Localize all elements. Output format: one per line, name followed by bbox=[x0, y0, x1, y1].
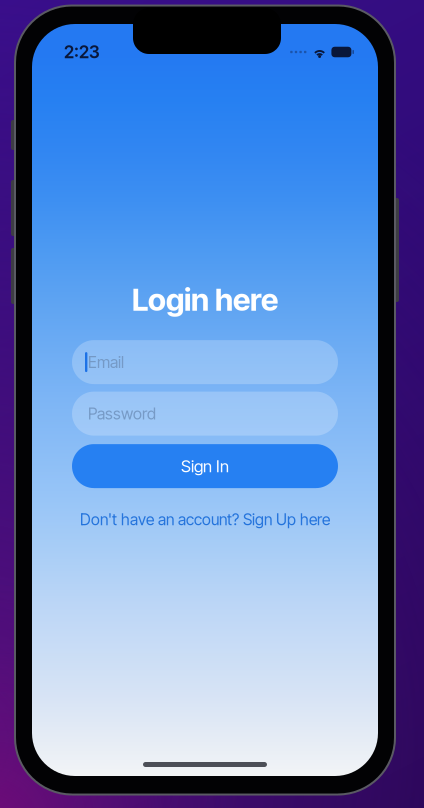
button[interactable]: Sign In bbox=[72, 444, 338, 488]
staticText: Password bbox=[88, 404, 156, 423]
staticText: Email bbox=[88, 352, 124, 372]
button[interactable]: Email bbox=[72, 340, 338, 384]
staticText: Sign In bbox=[181, 456, 229, 476]
staticText: Don't have an account? Sign Up here bbox=[80, 510, 330, 529]
button[interactable]: Password bbox=[72, 392, 338, 436]
staticText: 2:23 bbox=[64, 41, 100, 62]
staticText: Login here bbox=[132, 281, 278, 318]
button[interactable]: Don't have an account? Sign Up here bbox=[80, 510, 330, 529]
